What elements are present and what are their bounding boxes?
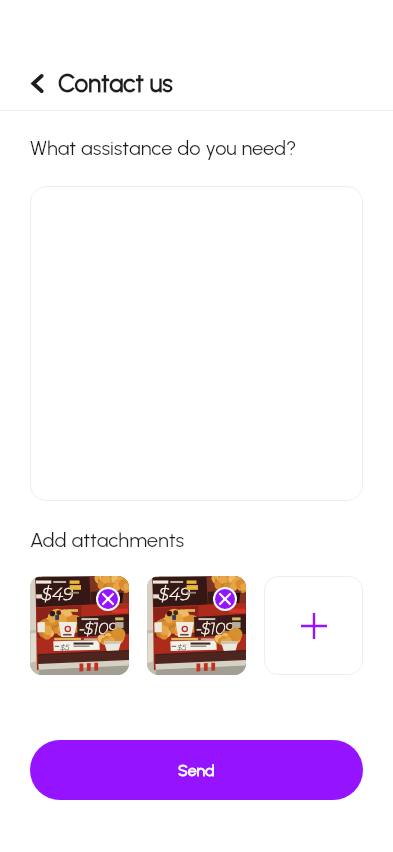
staticText: What assistance do you need? bbox=[30, 136, 297, 160]
button[interactable]: Attachment preview bbox=[147, 576, 246, 675]
staticText: Contact us bbox=[58, 69, 173, 98]
button[interactable]: Add attachment bbox=[264, 576, 363, 675]
button[interactable]: Attachment preview bbox=[30, 576, 129, 675]
button[interactable]: Remove attachment bbox=[96, 587, 120, 611]
staticText: Send bbox=[178, 761, 215, 780]
staticText: Add attachments bbox=[30, 528, 185, 552]
button[interactable]: Remove attachment bbox=[213, 587, 237, 611]
button[interactable]: Back bbox=[23, 69, 51, 97]
button[interactable]: Send bbox=[30, 740, 363, 800]
